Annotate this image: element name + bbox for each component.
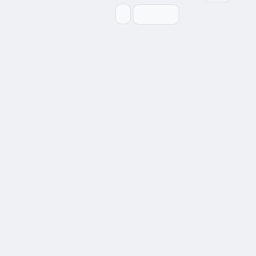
button[interactable]: Search — [133, 4, 179, 24]
button[interactable]: Back — [115, 4, 130, 24]
button[interactable]: More — [203, 0, 231, 2]
